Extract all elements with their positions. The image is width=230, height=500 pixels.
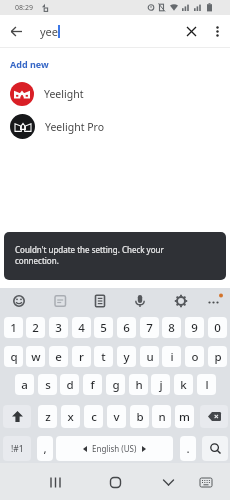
- button[interactable]: a: [15, 374, 34, 395]
- staticText: 2: [32, 320, 39, 336]
- button[interactable]: Yeelight: [0, 78, 230, 109]
- staticText: 9: [191, 320, 198, 336]
- staticText: i: [170, 349, 174, 365]
- button[interactable]: !#1: [3, 436, 31, 461]
- staticText: 8: [168, 320, 175, 336]
- staticText: f: [90, 377, 95, 393]
- button[interactable]: 1: [4, 317, 23, 338]
- staticText: z: [45, 409, 51, 425]
- button[interactable]: [175, 15, 207, 48]
- button[interactable]: m: [175, 405, 194, 428]
- button[interactable]: [205, 15, 230, 48]
- staticText: 3: [55, 320, 62, 336]
- button[interactable]: [168, 288, 194, 315]
- staticText: c: [91, 409, 97, 425]
- button[interactable]: [47, 288, 73, 315]
- button[interactable]: .: [180, 436, 196, 461]
- button[interactable]: o: [185, 346, 204, 367]
- button[interactable]: 2: [26, 317, 45, 338]
- button[interactable]: y: [117, 346, 136, 367]
- staticText: l: [205, 377, 209, 393]
- staticText: y: [123, 349, 130, 365]
- staticText: h: [135, 377, 143, 393]
- button[interactable]: 6: [117, 317, 136, 338]
- staticText: yee: [40, 24, 59, 39]
- staticText: u: [146, 349, 154, 365]
- staticText: m: [179, 409, 190, 425]
- button[interactable]: English (US): [56, 436, 173, 461]
- button[interactable]: 9: [185, 317, 204, 338]
- staticText: s: [45, 377, 51, 393]
- staticText: English (US): [92, 443, 137, 454]
- button[interactable]: [200, 405, 228, 428]
- button[interactable]: q: [4, 346, 23, 367]
- staticText: a: [21, 377, 28, 393]
- button[interactable]: 0: [208, 317, 227, 338]
- staticText: e: [55, 349, 62, 365]
- button[interactable]: [6, 288, 32, 315]
- staticText: w: [31, 349, 41, 365]
- button[interactable]: 4: [72, 317, 91, 338]
- button[interactable]: b: [130, 405, 149, 428]
- button[interactable]: r: [72, 346, 91, 367]
- button[interactable]: j: [151, 374, 170, 395]
- staticText: Couldn't update the setting. Check your …: [15, 244, 164, 266]
- staticText: o: [191, 349, 199, 365]
- staticText: !#1: [11, 443, 24, 455]
- staticText: ,: [43, 441, 47, 457]
- button[interactable]: [87, 288, 113, 315]
- button[interactable]: i: [162, 346, 181, 367]
- button[interactable]: x: [61, 405, 80, 428]
- button[interactable]: Add new: [0, 54, 80, 72]
- button[interactable]: 3: [49, 317, 68, 338]
- button[interactable]: z: [38, 405, 57, 428]
- button[interactable]: g: [106, 374, 125, 395]
- staticText: d: [66, 377, 74, 393]
- staticText: b: [136, 409, 144, 425]
- button[interactable]: k: [174, 374, 193, 395]
- button[interactable]: t: [94, 346, 113, 367]
- button[interactable]: [200, 288, 226, 315]
- button[interactable]: Yeelight Pro: [0, 111, 230, 142]
- button[interactable]: [3, 405, 31, 428]
- staticText: 08:29: [15, 3, 33, 13]
- staticText: 7: [146, 320, 153, 336]
- button[interactable]: f: [83, 374, 102, 395]
- button[interactable]: l: [197, 374, 216, 395]
- button[interactable]: h: [129, 374, 148, 395]
- staticText: n: [158, 409, 166, 425]
- button[interactable]: [150, 464, 186, 500]
- button[interactable]: s: [38, 374, 57, 395]
- staticText: q: [10, 349, 18, 365]
- button[interactable]: c: [84, 405, 103, 428]
- staticText: p: [214, 349, 222, 365]
- button[interactable]: 7: [140, 317, 159, 338]
- staticText: Add new: [10, 58, 49, 70]
- staticText: 6: [123, 320, 130, 336]
- button[interactable]: p: [208, 346, 227, 367]
- button[interactable]: w: [26, 346, 45, 367]
- button[interactable]: d: [60, 374, 79, 395]
- button[interactable]: v: [107, 405, 126, 428]
- staticText: Yeelight Pro: [45, 120, 104, 134]
- button[interactable]: ,: [37, 436, 53, 461]
- button[interactable]: [127, 288, 153, 315]
- staticText: 1: [10, 320, 17, 336]
- button[interactable]: e: [49, 346, 68, 367]
- button[interactable]: [37, 464, 73, 500]
- staticText: x: [67, 409, 74, 425]
- staticText: v: [113, 409, 120, 425]
- button[interactable]: [202, 436, 228, 461]
- button[interactable]: 5: [94, 317, 113, 338]
- staticText: Yeelight: [44, 87, 84, 101]
- staticText: g: [112, 377, 120, 393]
- button[interactable]: 8: [162, 317, 181, 338]
- button[interactable]: n: [152, 405, 171, 428]
- staticText: .: [186, 441, 190, 457]
- button[interactable]: u: [140, 346, 159, 367]
- button[interactable]: [97, 464, 133, 500]
- staticText: 4: [78, 320, 85, 336]
- button[interactable]: [192, 466, 220, 498]
- staticText: r: [79, 349, 84, 365]
- button[interactable]: [0, 15, 33, 48]
